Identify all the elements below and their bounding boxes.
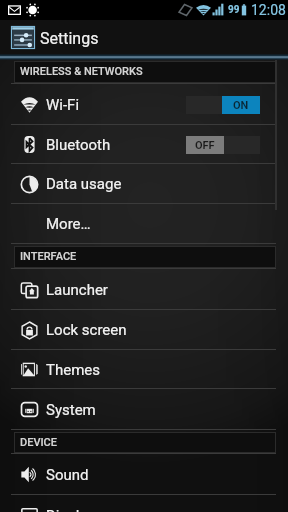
staticText: Launcher xyxy=(46,281,108,299)
staticText: Themes xyxy=(46,361,101,379)
staticText: INTERFACE xyxy=(20,250,77,263)
staticText: More… xyxy=(46,215,91,233)
staticText: Wi-Fi xyxy=(46,96,80,114)
button[interactable]: More… xyxy=(0,204,288,244)
button[interactable]: Lock screen xyxy=(0,310,288,350)
staticText: Lock screen xyxy=(46,321,127,339)
staticText: Sound xyxy=(46,466,89,484)
staticText: Data usage xyxy=(46,175,122,193)
staticText: Display xyxy=(46,507,95,512)
button[interactable]: ON xyxy=(186,96,260,114)
button[interactable]: Launcher xyxy=(0,269,288,310)
button[interactable]: Settings xyxy=(0,20,288,56)
button[interactable]: Wi-Fi xyxy=(0,84,288,125)
staticText: System xyxy=(46,401,96,419)
staticText: ON xyxy=(233,99,249,112)
staticText: 99 xyxy=(228,4,240,16)
button[interactable]: Themes xyxy=(0,350,288,389)
button[interactable]: System xyxy=(0,389,288,430)
button[interactable]: Bluetooth xyxy=(0,125,288,164)
staticText: Bluetooth xyxy=(46,136,111,154)
button[interactable]: Sound xyxy=(0,454,288,495)
staticText: OFF xyxy=(195,139,215,152)
button[interactable]: Data usage xyxy=(0,164,288,204)
staticText: 12:08 xyxy=(251,2,286,18)
staticText: WIRELESS & NETWORKS xyxy=(20,65,143,78)
button[interactable]: Display xyxy=(0,495,288,512)
staticText: DEVICE xyxy=(20,436,58,449)
staticText: Settings xyxy=(40,29,99,48)
button[interactable]: OFF xyxy=(186,136,260,154)
